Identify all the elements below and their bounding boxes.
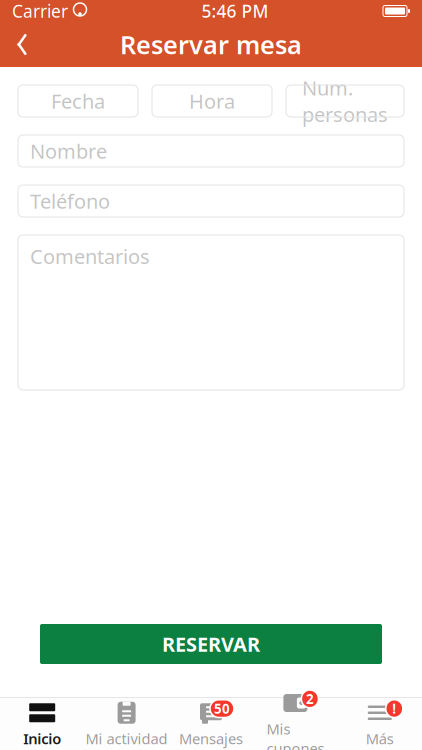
staticText: 50 [214,700,230,717]
staticText: Comentarios [30,243,150,270]
button[interactable]: Inicio [0,698,84,750]
button[interactable]: Num. personas [286,85,404,117]
staticText: Más [366,729,394,748]
staticText: Hora [189,88,235,114]
button[interactable]: Comentarios [18,235,404,390]
button[interactable]: ! [338,698,422,750]
button[interactable]: Hora [152,85,272,117]
staticText: Mensajes [179,729,243,748]
staticText: Num. personas [302,74,388,127]
staticText: Mis cupones [266,719,324,750]
button[interactable]: RESERVAR [40,624,382,664]
staticText: ! [392,700,396,717]
button[interactable]: Nombre [18,135,404,167]
staticText: 5:46 PM [201,0,268,22]
staticText: Reservar mesa [120,28,302,61]
staticText: RESERVAR [162,631,260,657]
button[interactable]: 2 [253,698,338,750]
button[interactable]: Back [0,22,44,66]
staticText: Mi actividad [86,729,168,748]
staticText: Inicio [23,729,61,748]
button[interactable]: Mi actividad [84,698,169,750]
staticText: Fecha [51,88,105,114]
staticText: 2 [306,690,314,708]
button[interactable]: 50 [169,698,253,750]
button[interactable]: Fecha [18,85,138,117]
staticText: Nombre [30,138,107,164]
button[interactable]: Teléfono [18,185,404,217]
staticText: Teléfono [30,188,110,214]
staticText: Carrier [12,0,68,22]
